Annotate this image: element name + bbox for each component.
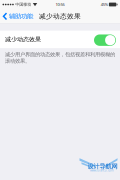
staticText: www.uisheji.com <box>90 168 114 172</box>
staticText: 减少用户界面的动态效果，包括视差和利用模糊的滚动效果。 <box>5 51 115 64</box>
staticText: 45% <box>101 2 108 7</box>
staticText: 10:56 <box>55 2 64 7</box>
staticText: 设计导航网 <box>87 163 117 170</box>
button[interactable]: 减少动态效果 <box>0 31 120 48</box>
staticText: 减少动态效果 <box>39 12 81 20</box>
button[interactable]: 辅助功能 <box>0 9 36 24</box>
staticText: 减少动态效果 <box>5 35 41 43</box>
staticText: 辅助功能 <box>9 12 33 20</box>
staticText: 中国移动 <box>15 2 31 7</box>
